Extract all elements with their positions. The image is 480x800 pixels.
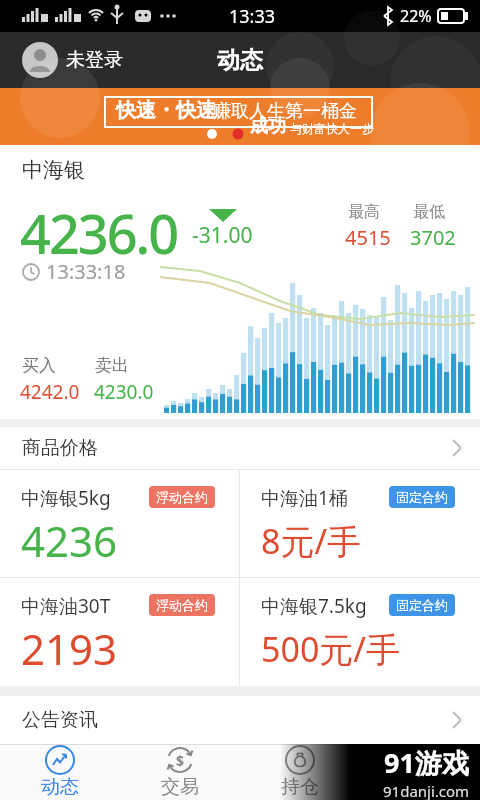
button[interactable]: 中海银7.5kg	[240, 578, 480, 686]
staticText: 中海银	[22, 157, 85, 183]
staticText: 动态	[41, 775, 79, 799]
button[interactable]: 持仓	[240, 745, 360, 800]
staticText: 最高	[348, 202, 380, 222]
staticText: 中海银7.5kg	[261, 593, 367, 619]
staticText: 固定合约	[396, 597, 448, 613]
staticText: 商品价格	[22, 436, 98, 460]
staticText: 中海油1桶	[261, 485, 348, 511]
staticText: 未登录	[66, 48, 123, 72]
staticText: 赚取人生第一桶金	[213, 100, 357, 123]
staticText: 22%	[400, 5, 432, 27]
staticText: 我的	[401, 775, 439, 799]
staticText: 91danji.com	[383, 781, 470, 800]
button[interactable]: 未登录	[22, 42, 123, 78]
staticText: 4242.0	[20, 379, 80, 405]
staticText: 4236.0	[20, 196, 178, 270]
staticText: 交易	[161, 775, 199, 799]
staticText: 浮动合约	[156, 489, 208, 505]
staticText: 浮动合约	[156, 597, 208, 613]
staticText: $	[176, 751, 185, 770]
staticText: 最低	[413, 202, 445, 222]
button[interactable]: 公告资讯	[0, 696, 480, 743]
staticText: 13:33	[229, 4, 276, 29]
button[interactable]: 快速・快速	[0, 88, 480, 145]
staticText: 卖出	[95, 355, 129, 376]
staticText: 动态	[217, 46, 263, 75]
button[interactable]: 我的	[360, 745, 480, 800]
button[interactable]: 中海油1桶	[240, 470, 480, 577]
button[interactable]: $	[120, 745, 240, 800]
staticText: 4515	[345, 224, 391, 251]
staticText: 4230.0	[94, 379, 154, 405]
staticText: -31.00	[192, 221, 253, 250]
staticText: 快速・快速	[116, 98, 216, 123]
staticText: 成功	[250, 115, 286, 138]
staticText: 2193	[21, 620, 118, 677]
staticText: 与财富快人一步	[290, 121, 374, 136]
staticText: 中海银5kg	[21, 485, 111, 511]
staticText: 500元/手	[261, 626, 400, 672]
staticText: 持仓	[281, 775, 319, 799]
button[interactable]: 中海银5kg	[0, 470, 239, 577]
staticText: 3702	[410, 224, 456, 251]
button[interactable]: 动态	[0, 745, 120, 800]
staticText: 8元/手	[261, 518, 362, 564]
staticText: 公告资讯	[22, 708, 98, 732]
staticText: 买入	[22, 355, 56, 376]
button[interactable]: 中海银	[0, 145, 480, 419]
staticText: 91游戏	[384, 744, 469, 781]
button[interactable]: 中海油30T	[0, 578, 239, 686]
staticText: 4236	[21, 512, 118, 569]
staticText: 13:33:18	[46, 258, 126, 285]
button[interactable]: 商品价格	[0, 427, 480, 469]
staticText: 中海油30T	[21, 593, 111, 619]
staticText: 固定合约	[396, 489, 448, 505]
